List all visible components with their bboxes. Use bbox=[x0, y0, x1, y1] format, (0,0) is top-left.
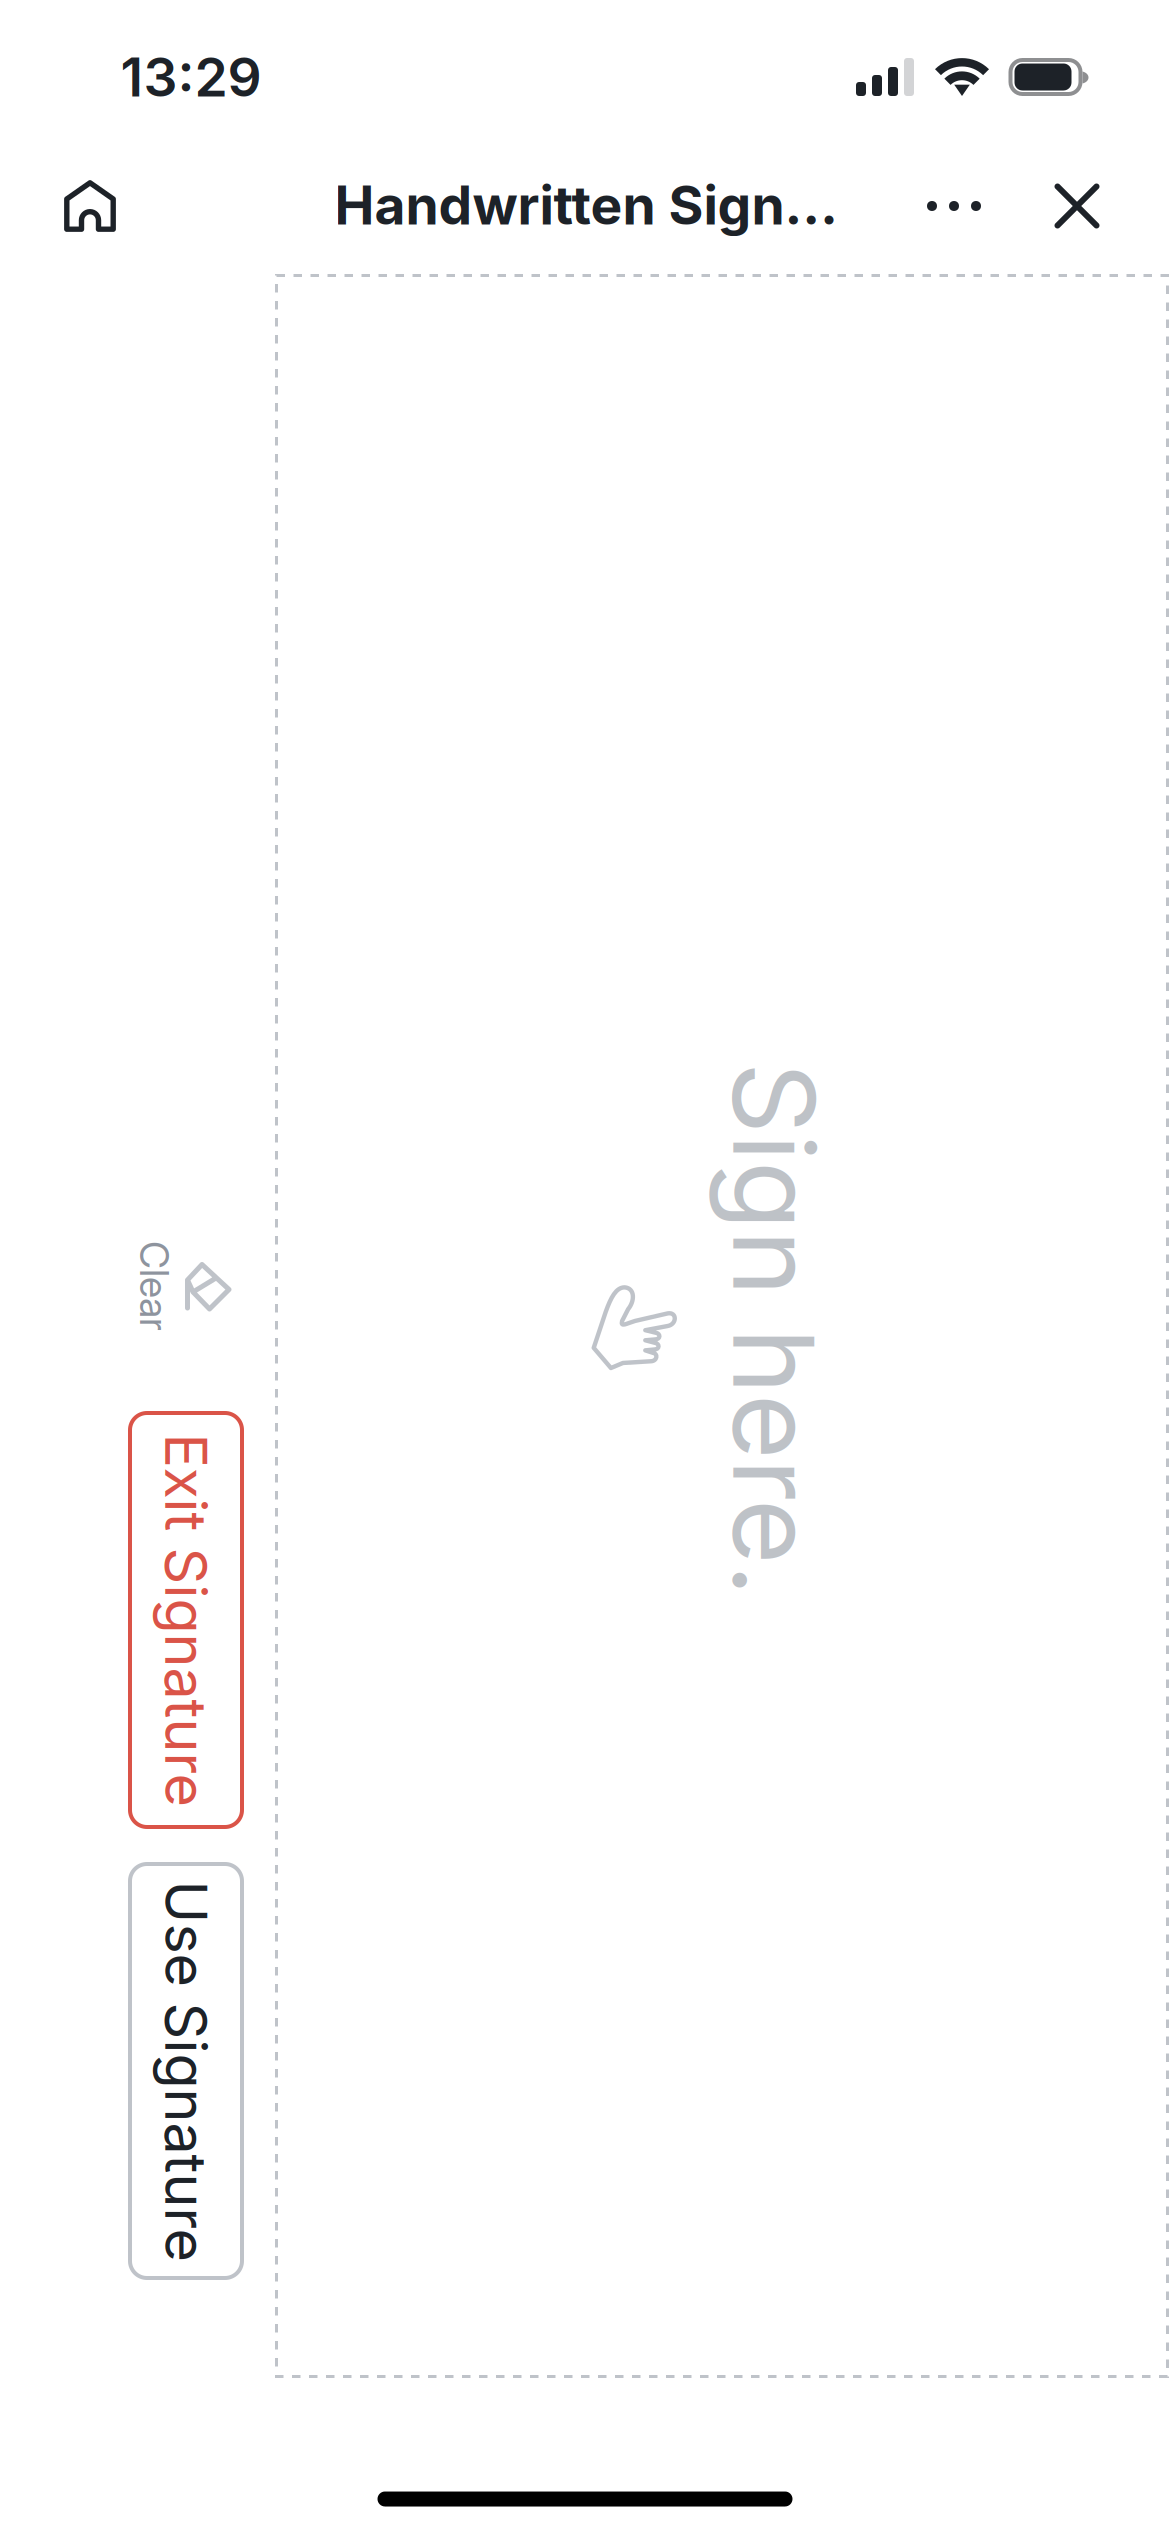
staticText: Clear bbox=[109, 1263, 199, 1309]
staticText: Handwritten Sign… bbox=[334, 173, 837, 237]
button[interactable]: Home bbox=[42, 162, 138, 250]
staticText: 13:29 bbox=[120, 45, 261, 109]
button[interactable]: Close bbox=[1034, 162, 1120, 250]
staticText: Sign here. bbox=[507, 1261, 1041, 1397]
button[interactable]: More options bbox=[911, 162, 997, 250]
button[interactable]: Use Signature bbox=[0, 1864, 393, 2278]
button[interactable]: Clear bbox=[136, 1238, 236, 1334]
staticText: Exit Signature bbox=[0, 1585, 372, 1655]
button[interactable]: Exit Signature bbox=[0, 1413, 393, 1827]
staticText: Use Signature bbox=[0, 2036, 376, 2106]
